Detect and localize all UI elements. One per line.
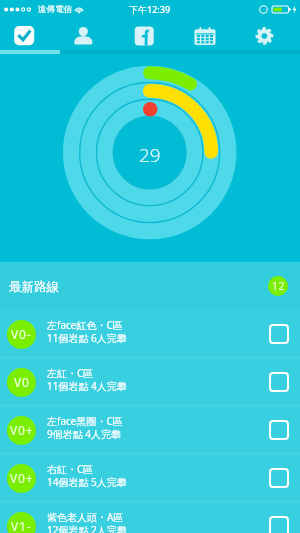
- button[interactable]: V0: [0, 358, 300, 406]
- button[interactable]: V1-: [0, 502, 300, 533]
- button[interactable]: V0-: [0, 310, 300, 358]
- staticText: 12: [272, 279, 285, 293]
- button[interactable]: V0+: [0, 406, 300, 454]
- button[interactable]: Routes: [0, 18, 60, 54]
- staticText: 11個岩點 4人完攀: [47, 379, 127, 393]
- button[interactable]: V0+: [0, 454, 300, 502]
- button[interactable]: Profile: [60, 18, 120, 54]
- button[interactable]: Facebook: [120, 18, 180, 54]
- staticText: 紫色老人頭・A區: [47, 510, 124, 524]
- staticText: 左紅・C區: [47, 366, 94, 380]
- staticText: 最新路線: [9, 279, 59, 295]
- staticText: 下午12:39: [129, 3, 171, 15]
- staticText: 11個岩點 6人完攀: [47, 331, 127, 345]
- staticText: V0+: [10, 422, 34, 438]
- staticText: 左face黑圈・C區: [47, 414, 123, 428]
- staticText: V0+: [10, 470, 34, 486]
- staticText: 右紅・C區: [47, 462, 94, 476]
- button[interactable]: Calendar: [180, 18, 240, 54]
- staticText: V0-: [11, 326, 32, 342]
- staticText: V0: [14, 374, 30, 390]
- staticText: 遠傳電信: [38, 4, 72, 15]
- button[interactable]: Settings: [240, 18, 300, 54]
- staticText: 14個岩點 5人完攀: [47, 475, 127, 489]
- staticText: 29: [139, 142, 161, 168]
- staticText: 9個岩點 4人完攀: [47, 427, 122, 441]
- staticText: V1-: [11, 518, 32, 533]
- staticText: 左face紅色・C區: [47, 318, 123, 332]
- button[interactable]: 12: [268, 276, 288, 296]
- staticText: 12個岩點 2人完攀: [47, 523, 127, 533]
